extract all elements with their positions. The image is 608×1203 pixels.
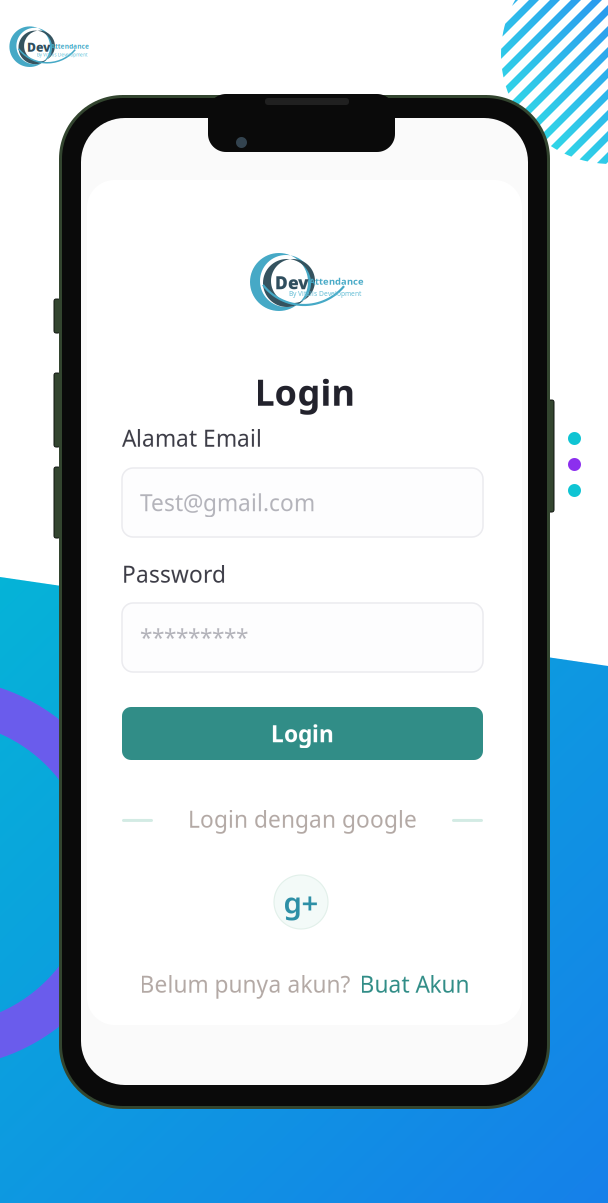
staticText: Dev xyxy=(35,45,69,68)
button[interactable]: Buat Akun xyxy=(359,969,469,999)
staticText: Attendance xyxy=(69,49,124,61)
staticText: By Vitalis Development xyxy=(49,63,121,72)
staticText: Belum punya akun? xyxy=(139,969,350,999)
staticText: g+ xyxy=(283,882,318,921)
staticText: Alamat Email xyxy=(122,423,262,453)
staticText: Login xyxy=(254,368,354,416)
staticText: Test@gmail.com xyxy=(140,487,315,517)
button[interactable]: Login xyxy=(122,707,483,760)
staticText: ********* xyxy=(140,622,248,652)
staticText: By Vitalis Development xyxy=(289,289,361,298)
button[interactable]: Sign in with Google xyxy=(274,875,328,929)
staticText: Login dengan google xyxy=(188,804,417,834)
staticText: Dev xyxy=(275,271,309,294)
staticText: Attendance xyxy=(309,275,364,287)
staticText: Login xyxy=(271,718,334,748)
staticText: Password xyxy=(122,559,226,589)
staticText: Buat Akun xyxy=(359,969,469,999)
